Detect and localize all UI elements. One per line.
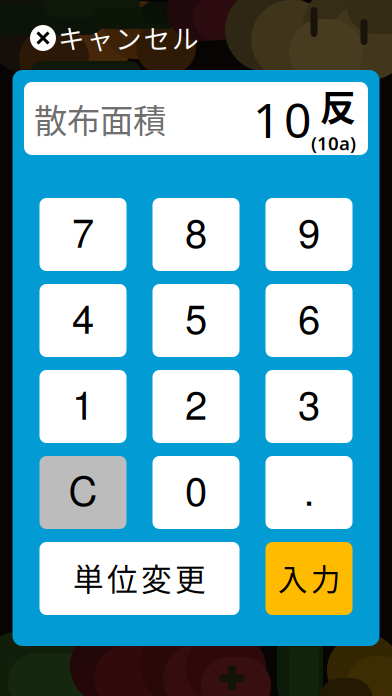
button[interactable]: キャンセル xyxy=(30,19,199,57)
button[interactable]: 3 xyxy=(265,370,352,443)
button[interactable]: 8 xyxy=(152,198,239,271)
staticText: C xyxy=(68,460,97,517)
staticText: 5 xyxy=(185,288,207,345)
button[interactable]: 6 xyxy=(265,284,352,357)
staticText: 0 xyxy=(185,460,207,517)
button[interactable]: C xyxy=(39,456,126,529)
staticText: 8 xyxy=(185,202,207,259)
button[interactable]: 9 xyxy=(265,198,352,271)
button[interactable]: 単位変更 xyxy=(39,542,239,615)
staticText: . xyxy=(303,460,314,517)
staticText: キャンセル xyxy=(58,18,199,56)
staticText: (10a) xyxy=(311,131,356,155)
staticText: 単位変更 xyxy=(73,555,206,600)
button[interactable]: . xyxy=(265,456,352,529)
button[interactable]: 2 xyxy=(152,370,239,443)
button[interactable]: 5 xyxy=(152,284,239,357)
staticText: 3 xyxy=(298,374,320,431)
staticText: 2 xyxy=(185,374,207,431)
staticText: 散布面積 xyxy=(34,94,166,143)
staticText: 9 xyxy=(298,202,320,259)
button[interactable]: 7 xyxy=(39,198,126,271)
staticText: 7 xyxy=(72,202,94,259)
staticText: 4 xyxy=(72,288,94,345)
staticText: 入力 xyxy=(278,556,340,599)
button[interactable]: 入力 xyxy=(265,542,352,615)
staticText: 10 xyxy=(253,88,311,151)
button[interactable]: 4 xyxy=(39,284,126,357)
staticText: 6 xyxy=(298,288,320,345)
button[interactable]: 1 xyxy=(39,370,126,443)
staticText: 1 xyxy=(72,374,94,431)
staticText: 反 xyxy=(320,79,356,132)
button[interactable]: 0 xyxy=(152,456,239,529)
